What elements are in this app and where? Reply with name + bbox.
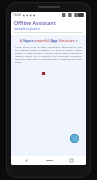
- button[interactable]: Location: [70, 134, 79, 143]
- staticText: Lorem ipsum dolor sit amet, consectetur …: [15, 46, 82, 64]
- button[interactable]: Back: [18, 156, 34, 165]
- button[interactable]: example.org/assist: [14, 27, 40, 31]
- button[interactable]: Home: [41, 156, 57, 165]
- staticText: A Super powerful App Structure »: [15, 38, 82, 43]
- staticText: 10:24: [13, 13, 21, 17]
- button[interactable]: Offline Assistant: [14, 19, 56, 26]
- button[interactable]: Recent apps: [63, 156, 79, 165]
